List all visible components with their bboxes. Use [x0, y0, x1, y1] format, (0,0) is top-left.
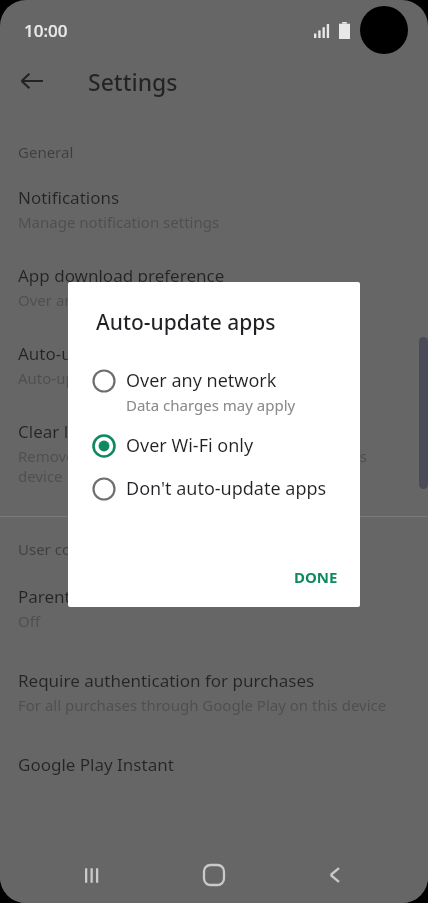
staticText: Don't auto-update apps — [126, 476, 327, 501]
staticText: For all purchases through Google Play on… — [18, 695, 387, 715]
button[interactable]: Back — [10, 59, 54, 103]
button[interactable]: Over Wi-Fi only — [68, 424, 360, 467]
staticText: Remove the searches you have performed o… — [18, 446, 410, 486]
staticText: General — [18, 142, 74, 162]
staticText: Notifications — [18, 186, 120, 209]
staticText: Off — [18, 611, 41, 631]
button[interactable]: Parental controls — [0, 585, 428, 631]
staticText: Google Play Instant — [18, 753, 174, 776]
staticText: Over any network — [18, 290, 144, 310]
staticText: Require authentication for purchases — [18, 669, 315, 692]
button[interactable]: DONE — [282, 559, 350, 595]
button[interactable]: Auto-update apps — [0, 342, 428, 388]
staticText: Data charges may apply — [126, 395, 296, 415]
staticText: Auto-update apps — [18, 342, 161, 365]
button[interactable]: Over any network — [68, 359, 360, 424]
button[interactable]: Back — [307, 847, 363, 903]
button[interactable]: Recents — [65, 847, 121, 903]
button[interactable]: Notifications — [0, 186, 428, 232]
button[interactable]: Home — [186, 847, 242, 903]
button[interactable]: Clear local search history — [0, 420, 428, 486]
staticText: Manage notification settings — [18, 212, 220, 232]
staticText: Over Wi-Fi only — [126, 433, 254, 458]
staticText: Auto-update apps — [96, 308, 276, 337]
button[interactable]: Require authentication for purchases — [0, 669, 428, 715]
staticText: Parental controls — [18, 585, 154, 608]
staticText: 10:00 — [24, 19, 68, 42]
staticText: User controls — [18, 539, 112, 559]
staticText: Over any network — [126, 368, 277, 393]
staticText: Auto-update apps over Wi-Fi only — [18, 368, 252, 388]
staticText: App download preference — [18, 264, 225, 287]
staticText: Settings — [88, 66, 178, 97]
staticText: Clear local search history — [18, 420, 218, 443]
button[interactable]: App download preference — [0, 264, 428, 310]
staticText: DONE — [294, 567, 338, 587]
button[interactable]: Don't auto-update apps — [68, 467, 360, 510]
